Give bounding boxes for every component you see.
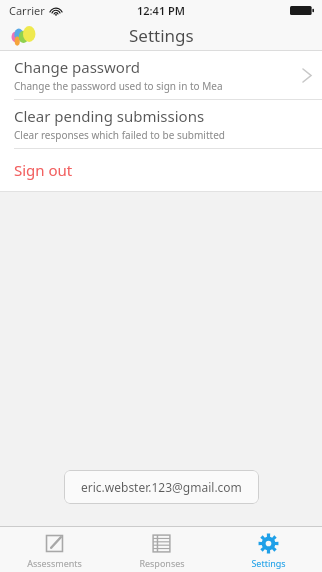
button[interactable]: Clear pending submissions	[0, 100, 322, 148]
staticText: Clear pending submissions	[14, 106, 205, 126]
other: Assessments	[44, 533, 65, 554]
staticText: Sign out	[14, 160, 73, 180]
staticText: Assessments	[27, 557, 82, 569]
staticText: 12:41 PM	[137, 3, 186, 18]
other: App logo	[11, 25, 37, 47]
staticText: Settings	[129, 24, 194, 47]
staticText: eric.webster.123@gmail.com	[81, 479, 242, 495]
button[interactable]: Change password	[0, 51, 322, 99]
staticText: Settings	[251, 557, 286, 569]
button[interactable]: Settings	[215, 527, 322, 572]
staticText: Change password	[14, 57, 141, 77]
button[interactable]: Responses	[108, 527, 215, 572]
other: Settings	[258, 533, 279, 554]
button[interactable]: Assessments	[0, 527, 108, 572]
button[interactable]: eric.webster.123@gmail.com	[64, 470, 259, 504]
button[interactable]: Sign out	[0, 149, 322, 191]
staticText: Clear responses which failed to be submi…	[14, 128, 225, 142]
staticText: Responses	[139, 557, 185, 569]
other: Responses	[151, 533, 172, 554]
staticText: Change the password used to sign in to M…	[14, 79, 223, 93]
staticText: Carrier	[9, 3, 45, 18]
